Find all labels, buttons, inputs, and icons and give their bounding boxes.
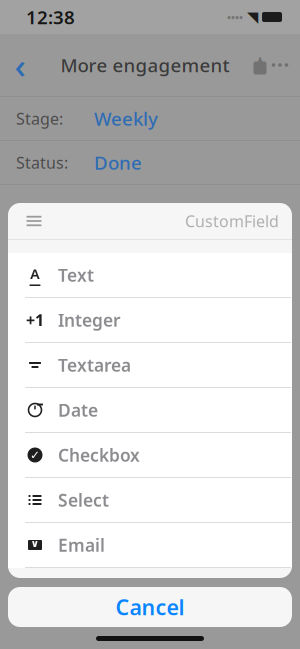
staticText: Stage: — [16, 108, 63, 129]
button[interactable]: Share — [250, 54, 270, 76]
staticText: CustomField — [185, 210, 279, 232]
staticText: Date — [58, 398, 98, 421]
staticText: Cancel — [115, 593, 184, 621]
staticText: Status: — [16, 152, 68, 173]
staticText: Text — [58, 263, 94, 286]
staticText: ✓ — [30, 448, 40, 462]
button[interactable]: Back — [0, 45, 40, 85]
staticText: •••• — [227, 10, 243, 24]
staticText: Done — [94, 150, 142, 175]
button[interactable]: ✓ — [8, 433, 292, 478]
staticText: Textarea — [58, 353, 131, 376]
button[interactable]: A — [8, 253, 292, 298]
button[interactable]: Textarea — [8, 343, 292, 388]
button[interactable]: Menu — [8, 211, 44, 231]
staticText: +1 — [26, 309, 44, 331]
staticText: Select — [58, 488, 109, 511]
staticText: More engagement — [60, 53, 229, 77]
staticText: Integer — [58, 308, 121, 331]
button[interactable]: Select — [8, 478, 292, 523]
staticText: ◥ — [247, 9, 258, 25]
staticText: Email — [58, 533, 105, 556]
staticText: A — [30, 264, 40, 283]
staticText: Weekly — [94, 106, 158, 131]
button[interactable]: +1 — [8, 298, 292, 343]
button[interactable]: Cancel — [8, 587, 292, 627]
button[interactable]: More options — [270, 55, 290, 75]
button[interactable]: Date — [8, 388, 292, 433]
staticText: 12:38 — [26, 5, 75, 29]
button[interactable]: ∨ — [8, 523, 292, 568]
staticText: ‹ — [14, 42, 25, 88]
staticText: ▲ — [257, 54, 263, 64]
staticText: ∨ — [30, 537, 39, 549]
staticText: Checkbox — [58, 443, 140, 466]
